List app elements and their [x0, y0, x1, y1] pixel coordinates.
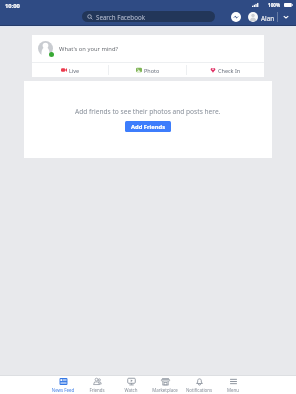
staticText: Add friends to see their photos and post…: [75, 107, 221, 116]
staticText: What's on your mind?: [59, 45, 118, 53]
button[interactable]: Check In: [187, 63, 264, 77]
staticText: 10:00: [5, 2, 20, 10]
staticText: Notifications: [182, 387, 216, 393]
button[interactable]: Live: [32, 63, 108, 77]
staticText: Live: [69, 67, 80, 74]
button[interactable]: Watch: [114, 375, 148, 394]
staticText: Search Facebook: [96, 13, 145, 21]
staticText: Menu: [216, 387, 250, 393]
staticText: News Feed: [46, 387, 80, 393]
staticText: 100%: [268, 2, 281, 8]
staticText: Watch: [114, 387, 148, 393]
staticText: Add Friends: [131, 123, 166, 131]
button[interactable]: What's on your mind?: [38, 35, 264, 62]
staticText: Friends: [80, 387, 114, 393]
button[interactable]: Account menu: [280, 11, 292, 23]
staticText: Photo: [144, 67, 160, 74]
staticText: Alan: [261, 14, 275, 23]
button[interactable]: News Feed: [46, 375, 80, 394]
button[interactable]: Marketplace: [148, 375, 182, 394]
button[interactable]: Notifications: [182, 375, 216, 394]
button[interactable]: Photo: [109, 63, 186, 77]
staticText: Check In: [218, 67, 241, 74]
button[interactable]: Messenger: [231, 12, 241, 22]
button[interactable]: Add Friends: [125, 121, 171, 132]
button[interactable]: Search Facebook: [82, 11, 215, 22]
button[interactable]: Friends: [80, 375, 114, 394]
button[interactable]: Menu: [216, 375, 250, 394]
button[interactable]: Profile: [248, 12, 258, 22]
staticText: Marketplace: [148, 387, 182, 393]
